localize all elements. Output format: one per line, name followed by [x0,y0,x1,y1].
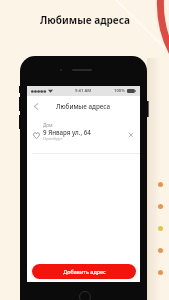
button[interactable] [156,261,165,283]
staticText: Дом [43,122,53,128]
button[interactable] [156,195,165,217]
staticText: Любимые адреса [40,13,130,27]
button[interactable] [156,217,165,239]
other: Home [79,291,91,300]
button[interactable]: Back [29,100,42,113]
staticText: Любимые адреса [56,102,111,111]
button[interactable]: Remove address [125,129,136,140]
staticText: 100% [114,88,125,94]
button[interactable]: Дом [27,116,140,154]
button[interactable] [156,173,165,195]
staticText: Оренбург [43,136,63,142]
staticText: Добавить адрес [63,268,106,275]
button[interactable]: Добавить адрес [32,264,136,279]
button[interactable] [156,239,165,261]
staticText: 9:41 AM [75,88,92,94]
staticText: 9 Января ул., 64 [43,128,91,136]
